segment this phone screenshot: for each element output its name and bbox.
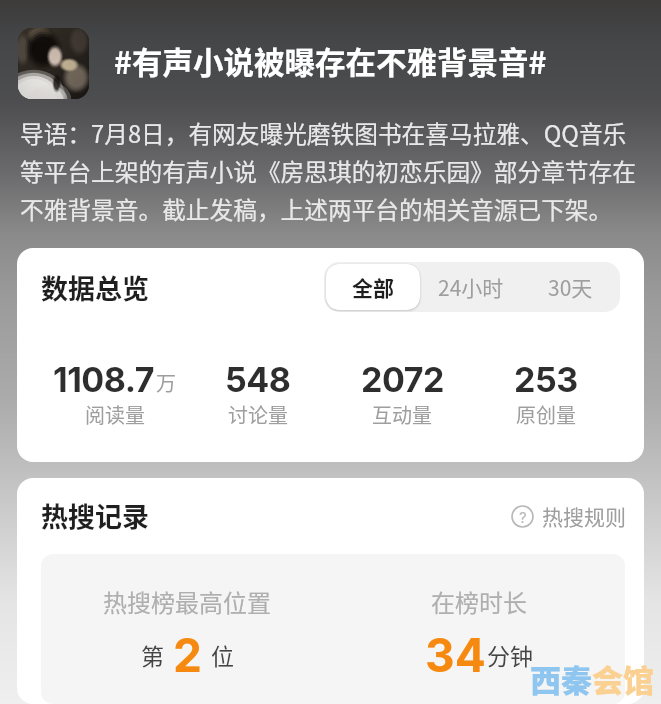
button[interactable]: Topic avatar	[18, 28, 89, 99]
staticText: 全部	[352, 272, 394, 302]
staticText: 位	[211, 638, 234, 671]
staticText: #有声小说被曝存在不雅背景音#	[114, 39, 547, 83]
staticText: 在榜时长	[431, 584, 527, 619]
button[interactable]: 全部	[326, 264, 420, 310]
button[interactable]: ?	[511, 501, 626, 531]
staticText: 西秦	[530, 656, 592, 701]
staticText: 第	[141, 638, 164, 671]
staticText: 分钟	[487, 638, 533, 671]
staticText: 24小时	[438, 272, 504, 302]
staticText: 2	[173, 627, 202, 674]
staticText: 热搜记录	[41, 496, 149, 535]
button[interactable]: 30天	[520, 262, 620, 312]
staticText: 原创量	[516, 400, 576, 429]
staticText: ?	[519, 508, 527, 526]
staticText: 数据总览	[41, 268, 149, 307]
staticText: 2072	[361, 359, 444, 400]
staticText: 1108.7	[53, 359, 154, 400]
staticText: 导语：7月8日，有网友曝光磨铁图书在喜马拉雅、QQ音乐 等平台上架的有声小说《房…	[20, 116, 636, 226]
staticText: 30天	[548, 272, 593, 302]
staticText: 热搜规则	[542, 501, 626, 531]
staticText: 讨论量	[228, 400, 288, 429]
staticText: 阅读量	[85, 400, 145, 429]
button[interactable]: 24小时	[422, 262, 520, 312]
staticText: 热搜榜最高位置	[103, 584, 271, 619]
staticText: 万	[156, 368, 176, 397]
staticText: 会馆	[592, 656, 654, 701]
staticText: 互动量	[372, 400, 432, 429]
staticText: 253	[514, 359, 578, 400]
staticText: 34	[425, 627, 486, 674]
staticText: 548	[225, 359, 291, 400]
